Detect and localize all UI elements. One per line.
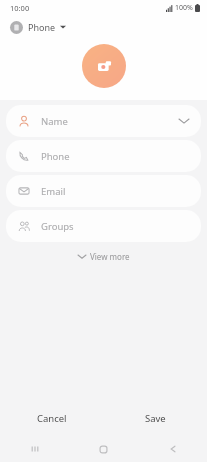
staticText: Cancel [37, 412, 67, 425]
button[interactable]: Phone [6, 140, 201, 172]
button[interactable]: Back [138, 436, 207, 462]
staticText: Groups [41, 220, 74, 233]
staticText: Name [41, 115, 68, 128]
button[interactable]: Cancel [0, 400, 103, 436]
button[interactable]: Phone [8, 18, 68, 36]
staticText: 100% [175, 3, 193, 13]
button[interactable]: Recent apps [0, 436, 69, 462]
staticText: Save [145, 412, 166, 425]
staticText: 10:00 [10, 3, 30, 13]
staticText: Phone [28, 21, 56, 33]
button[interactable]: Name [6, 105, 201, 137]
button[interactable]: Save [103, 400, 207, 436]
button[interactable]: View more [0, 242, 207, 270]
button[interactable]: Email [6, 175, 201, 207]
staticText: Phone [41, 150, 70, 163]
button[interactable]: Add contact photo [82, 44, 126, 88]
button[interactable]: Home [69, 436, 138, 462]
staticText: Email [41, 185, 66, 198]
staticText: View more [90, 251, 130, 262]
button[interactable]: Groups [6, 210, 201, 242]
